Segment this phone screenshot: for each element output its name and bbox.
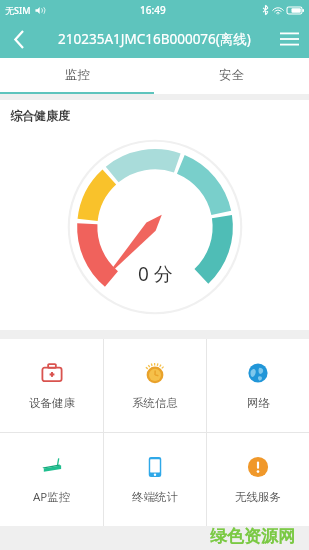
staticText: 安全 bbox=[219, 67, 244, 83]
staticText: 16:49 bbox=[140, 3, 166, 17]
staticText: 设备健康 bbox=[29, 396, 75, 410]
button[interactable]: 监控 bbox=[0, 58, 154, 92]
staticText: AP监控 bbox=[33, 489, 71, 505]
staticText: 无线服务 bbox=[235, 490, 281, 504]
staticText: 绿色资源网 bbox=[210, 526, 295, 546]
button[interactable]: 无线服务 bbox=[207, 433, 309, 526]
staticText: 综合健康度 bbox=[10, 108, 70, 123]
button[interactable]: 设备健康 bbox=[0, 339, 103, 432]
staticText: 终端统计 bbox=[132, 490, 178, 504]
staticText: 网络 bbox=[247, 396, 270, 410]
staticText: 0 分 bbox=[138, 261, 173, 287]
staticText: 系统信息 bbox=[132, 396, 178, 410]
button[interactable]: AP监控 bbox=[0, 433, 103, 526]
button[interactable]: 终端统计 bbox=[104, 433, 206, 526]
staticText: 监控 bbox=[65, 67, 90, 83]
button[interactable]: Menu bbox=[273, 23, 305, 55]
button[interactable]: Back bbox=[4, 24, 34, 54]
button[interactable]: 系统信息 bbox=[104, 339, 206, 432]
staticText: 210235A1JMC16B000076(离线) bbox=[58, 30, 251, 48]
button[interactable]: 安全 bbox=[154, 58, 309, 92]
button[interactable]: 网络 bbox=[207, 339, 309, 432]
staticText: 无SIM bbox=[5, 4, 31, 16]
